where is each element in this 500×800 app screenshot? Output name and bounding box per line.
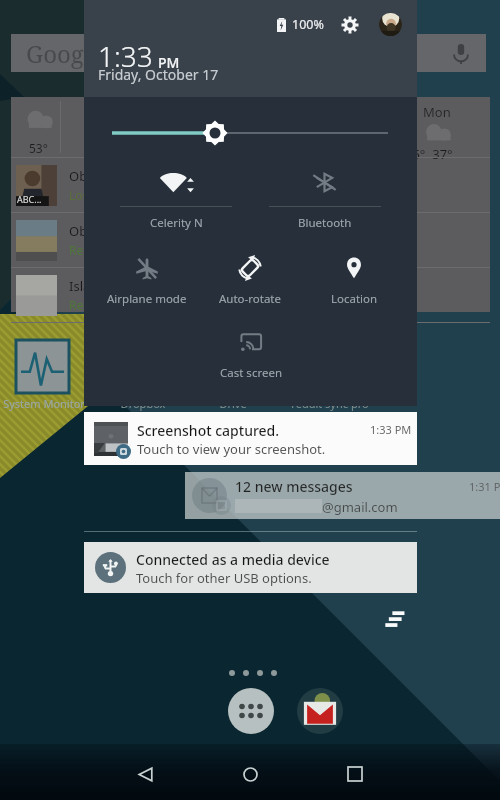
button[interactable]: 12 new messages — [185, 472, 500, 519]
button[interactable]: Home — [229, 753, 271, 795]
staticText: Connected as a media device — [136, 550, 330, 569]
staticText: Screenshot captured. — [137, 421, 280, 440]
button[interactable]: Settings — [341, 16, 359, 34]
button[interactable]: 53° — [11, 97, 490, 312]
staticText: 55° 37° — [405, 145, 453, 163]
staticText: ABC... — [17, 193, 42, 205]
staticText: Google — [26, 37, 105, 70]
button[interactable]: Celerity N — [102, 159, 250, 231]
staticText: reddit sync pro — [282, 396, 378, 411]
button[interactable]: Back — [124, 753, 166, 795]
staticText: System Monitor — [0, 396, 88, 411]
staticText: 1:33 — [98, 37, 153, 75]
button[interactable]: Google — [11, 34, 486, 72]
staticText: Location — [331, 291, 378, 307]
staticText: Celerity N — [150, 215, 203, 231]
button[interactable]: Connected as a media device — [84, 542, 417, 593]
staticText: Reuters — [69, 297, 113, 313]
staticText: 1:31 PM — [469, 479, 500, 494]
staticText: Los Angeles Times — [69, 187, 173, 203]
staticText: Bluetooth — [298, 215, 352, 231]
staticText: Touch for other USB options. — [136, 569, 312, 587]
staticText: Obama — [69, 167, 114, 185]
staticText: Touch to view your screenshot. — [137, 440, 326, 458]
button[interactable]: User profile — [379, 13, 402, 36]
button[interactable]: Gmail — [297, 688, 343, 734]
button[interactable]: Cast screen — [195, 327, 306, 381]
staticText: Mon — [423, 103, 451, 121]
staticText: 53° — [29, 140, 48, 156]
button[interactable]: Recent apps — [334, 753, 376, 795]
button[interactable]: Auto-rotate — [198, 253, 302, 307]
button[interactable]: Clear all notifications — [384, 608, 406, 630]
button[interactable]: Screenshot captured. — [84, 412, 417, 465]
staticText: PM — [158, 53, 180, 72]
staticText: Obama — [69, 222, 114, 240]
staticText: Airplane mode — [107, 291, 187, 307]
button[interactable]: All apps — [228, 688, 274, 734]
staticText: 12 new messages — [235, 477, 353, 496]
staticText: 100% — [292, 16, 324, 33]
staticText: Reuters — [69, 242, 113, 258]
staticText: Dropbox — [103, 396, 183, 411]
staticText: Cast screen — [220, 365, 282, 381]
button[interactable]: Bluetooth — [250, 159, 399, 231]
button[interactable]: System Monitor — [16, 340, 69, 393]
staticText: @gmail.com — [322, 498, 398, 516]
button[interactable]: Location — [302, 253, 406, 307]
staticText: 1:33 PM — [370, 422, 412, 437]
button[interactable]: Airplane mode — [95, 253, 198, 307]
staticText: Friday, October 17 — [98, 65, 219, 84]
staticText: Drive — [193, 396, 273, 411]
staticText: Islamic — [69, 277, 113, 295]
staticText: Auto-rotate — [219, 291, 281, 307]
